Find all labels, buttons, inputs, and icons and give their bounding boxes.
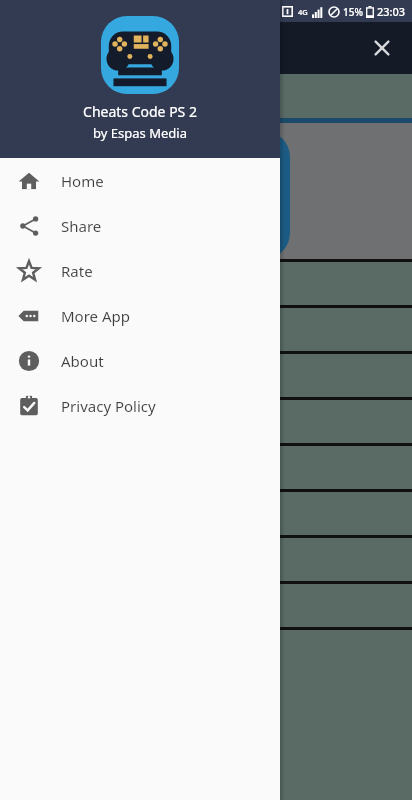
button[interactable]: Privacy Policy <box>0 383 280 428</box>
button[interactable] <box>0 262 412 305</box>
button[interactable] <box>0 446 412 489</box>
staticText: About <box>61 351 104 371</box>
staticText: 4G <box>298 7 308 17</box>
staticText: 23:03 <box>377 4 406 19</box>
staticText: Privacy Policy <box>61 396 156 416</box>
staticText: Rate <box>61 261 93 281</box>
staticText: Share <box>61 216 102 236</box>
button[interactable] <box>0 354 412 397</box>
button[interactable] <box>0 630 412 673</box>
staticText: Home <box>61 171 104 191</box>
button[interactable] <box>0 538 412 581</box>
button[interactable] <box>0 308 412 351</box>
button[interactable] <box>0 400 412 443</box>
button[interactable]: Close <box>358 24 406 72</box>
button[interactable]: About <box>0 338 280 383</box>
staticText: Cheats Code PS 2 <box>83 102 197 121</box>
button[interactable] <box>0 584 412 627</box>
button[interactable]: More App <box>0 293 280 338</box>
staticText: by Espas Media <box>93 124 187 142</box>
button[interactable] <box>0 492 412 535</box>
button[interactable]: Home <box>0 158 280 203</box>
staticText: 15% <box>343 5 363 19</box>
button[interactable]: Share <box>0 203 280 248</box>
button[interactable]: Rate <box>0 248 280 293</box>
staticText: More App <box>61 306 130 326</box>
